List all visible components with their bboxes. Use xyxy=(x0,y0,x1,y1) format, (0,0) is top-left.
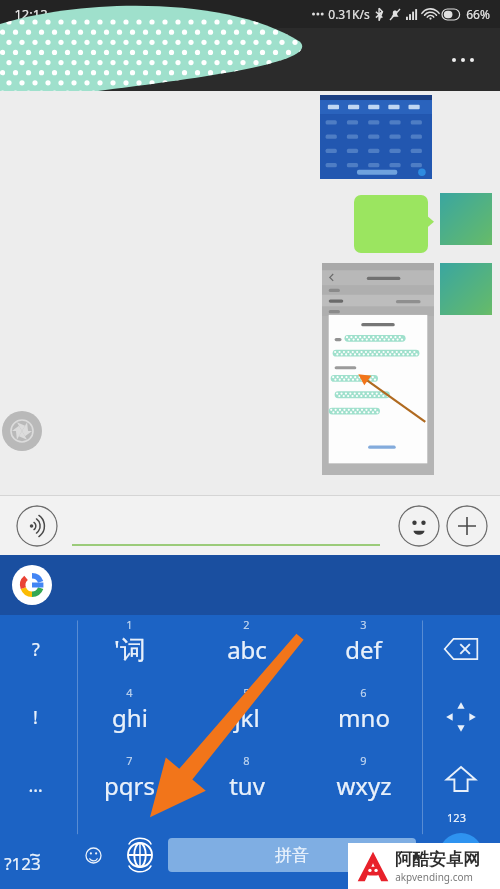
button[interactable]: Avatar xyxy=(440,193,492,245)
button[interactable]: Keyboard screenshot xyxy=(320,95,432,179)
staticText: abc xyxy=(227,633,267,666)
button[interactable]: 1 xyxy=(71,615,188,683)
button[interactable]: Voice input xyxy=(16,505,58,547)
staticText: def xyxy=(345,633,382,666)
staticText: ~ xyxy=(29,841,41,868)
staticText: 66% xyxy=(466,6,490,22)
staticText: 4 xyxy=(126,685,133,700)
button[interactable]: 6 xyxy=(305,683,422,751)
button[interactable] xyxy=(72,506,380,546)
button[interactable]: Shift xyxy=(422,751,500,820)
staticText: wxyz xyxy=(336,769,392,802)
button[interactable]: Emoji keyboard xyxy=(76,838,110,872)
button[interactable]: 3 xyxy=(305,615,422,683)
staticText: 1 xyxy=(126,617,133,632)
button[interactable]: More options xyxy=(444,50,482,70)
button[interactable] xyxy=(354,195,434,253)
button[interactable]: ! xyxy=(0,683,71,751)
button[interactable]: 2 xyxy=(188,615,305,683)
button[interactable]: Move cursor xyxy=(422,683,500,751)
button[interactable]: 5 xyxy=(188,683,305,751)
button[interactable]: Emoji xyxy=(398,505,440,547)
staticText: 阿酷安卓网 xyxy=(395,849,480,870)
button[interactable]: Switch language xyxy=(120,835,160,875)
staticText: 3 xyxy=(360,617,367,632)
staticText: ?123 xyxy=(4,852,41,875)
staticText: ? xyxy=(32,637,40,662)
button[interactable]: Settings screenshot xyxy=(322,263,434,475)
staticText: 拼音 xyxy=(275,845,309,866)
staticText: 0 xyxy=(403,839,410,854)
staticText: 7 xyxy=(126,753,133,768)
button[interactable]: Contact avatar xyxy=(2,411,42,451)
button[interactable]: 9 xyxy=(305,751,422,820)
button[interactable]: Enter xyxy=(422,820,500,889)
staticText: 8 xyxy=(243,753,250,768)
button[interactable]: 7 xyxy=(71,751,188,820)
button[interactable]: More actions xyxy=(446,505,488,547)
staticText: akpvending.com xyxy=(395,870,473,884)
staticText: 0.31K/s xyxy=(328,6,370,22)
button[interactable]: Avatar xyxy=(440,263,492,315)
staticText: 2 xyxy=(243,617,250,632)
button[interactable]: 4 xyxy=(71,683,188,751)
staticText: jkl xyxy=(234,701,260,734)
button[interactable]: 8 xyxy=(188,751,305,820)
staticText: … xyxy=(28,773,43,798)
staticText: ghi xyxy=(112,701,148,734)
staticText: tuv xyxy=(229,769,265,802)
staticText: '词 xyxy=(114,631,146,667)
staticText: 5 xyxy=(243,685,250,700)
staticText: 12:12 xyxy=(14,5,48,23)
button[interactable]: Backspace xyxy=(422,615,500,683)
staticText: ! xyxy=(33,705,38,730)
staticText: mno xyxy=(338,701,390,734)
button[interactable]: … xyxy=(0,751,71,820)
button[interactable]: ?123 xyxy=(4,852,41,875)
staticText: 9 xyxy=(360,753,367,768)
button[interactable]: Google search xyxy=(12,565,52,605)
staticText: 123 xyxy=(447,810,466,825)
button[interactable]: ? xyxy=(0,615,71,683)
button[interactable]: 拼音 xyxy=(168,838,416,872)
staticText: pqrs xyxy=(104,769,155,802)
button[interactable]: ~ xyxy=(0,820,70,889)
staticText: 6 xyxy=(360,685,367,700)
